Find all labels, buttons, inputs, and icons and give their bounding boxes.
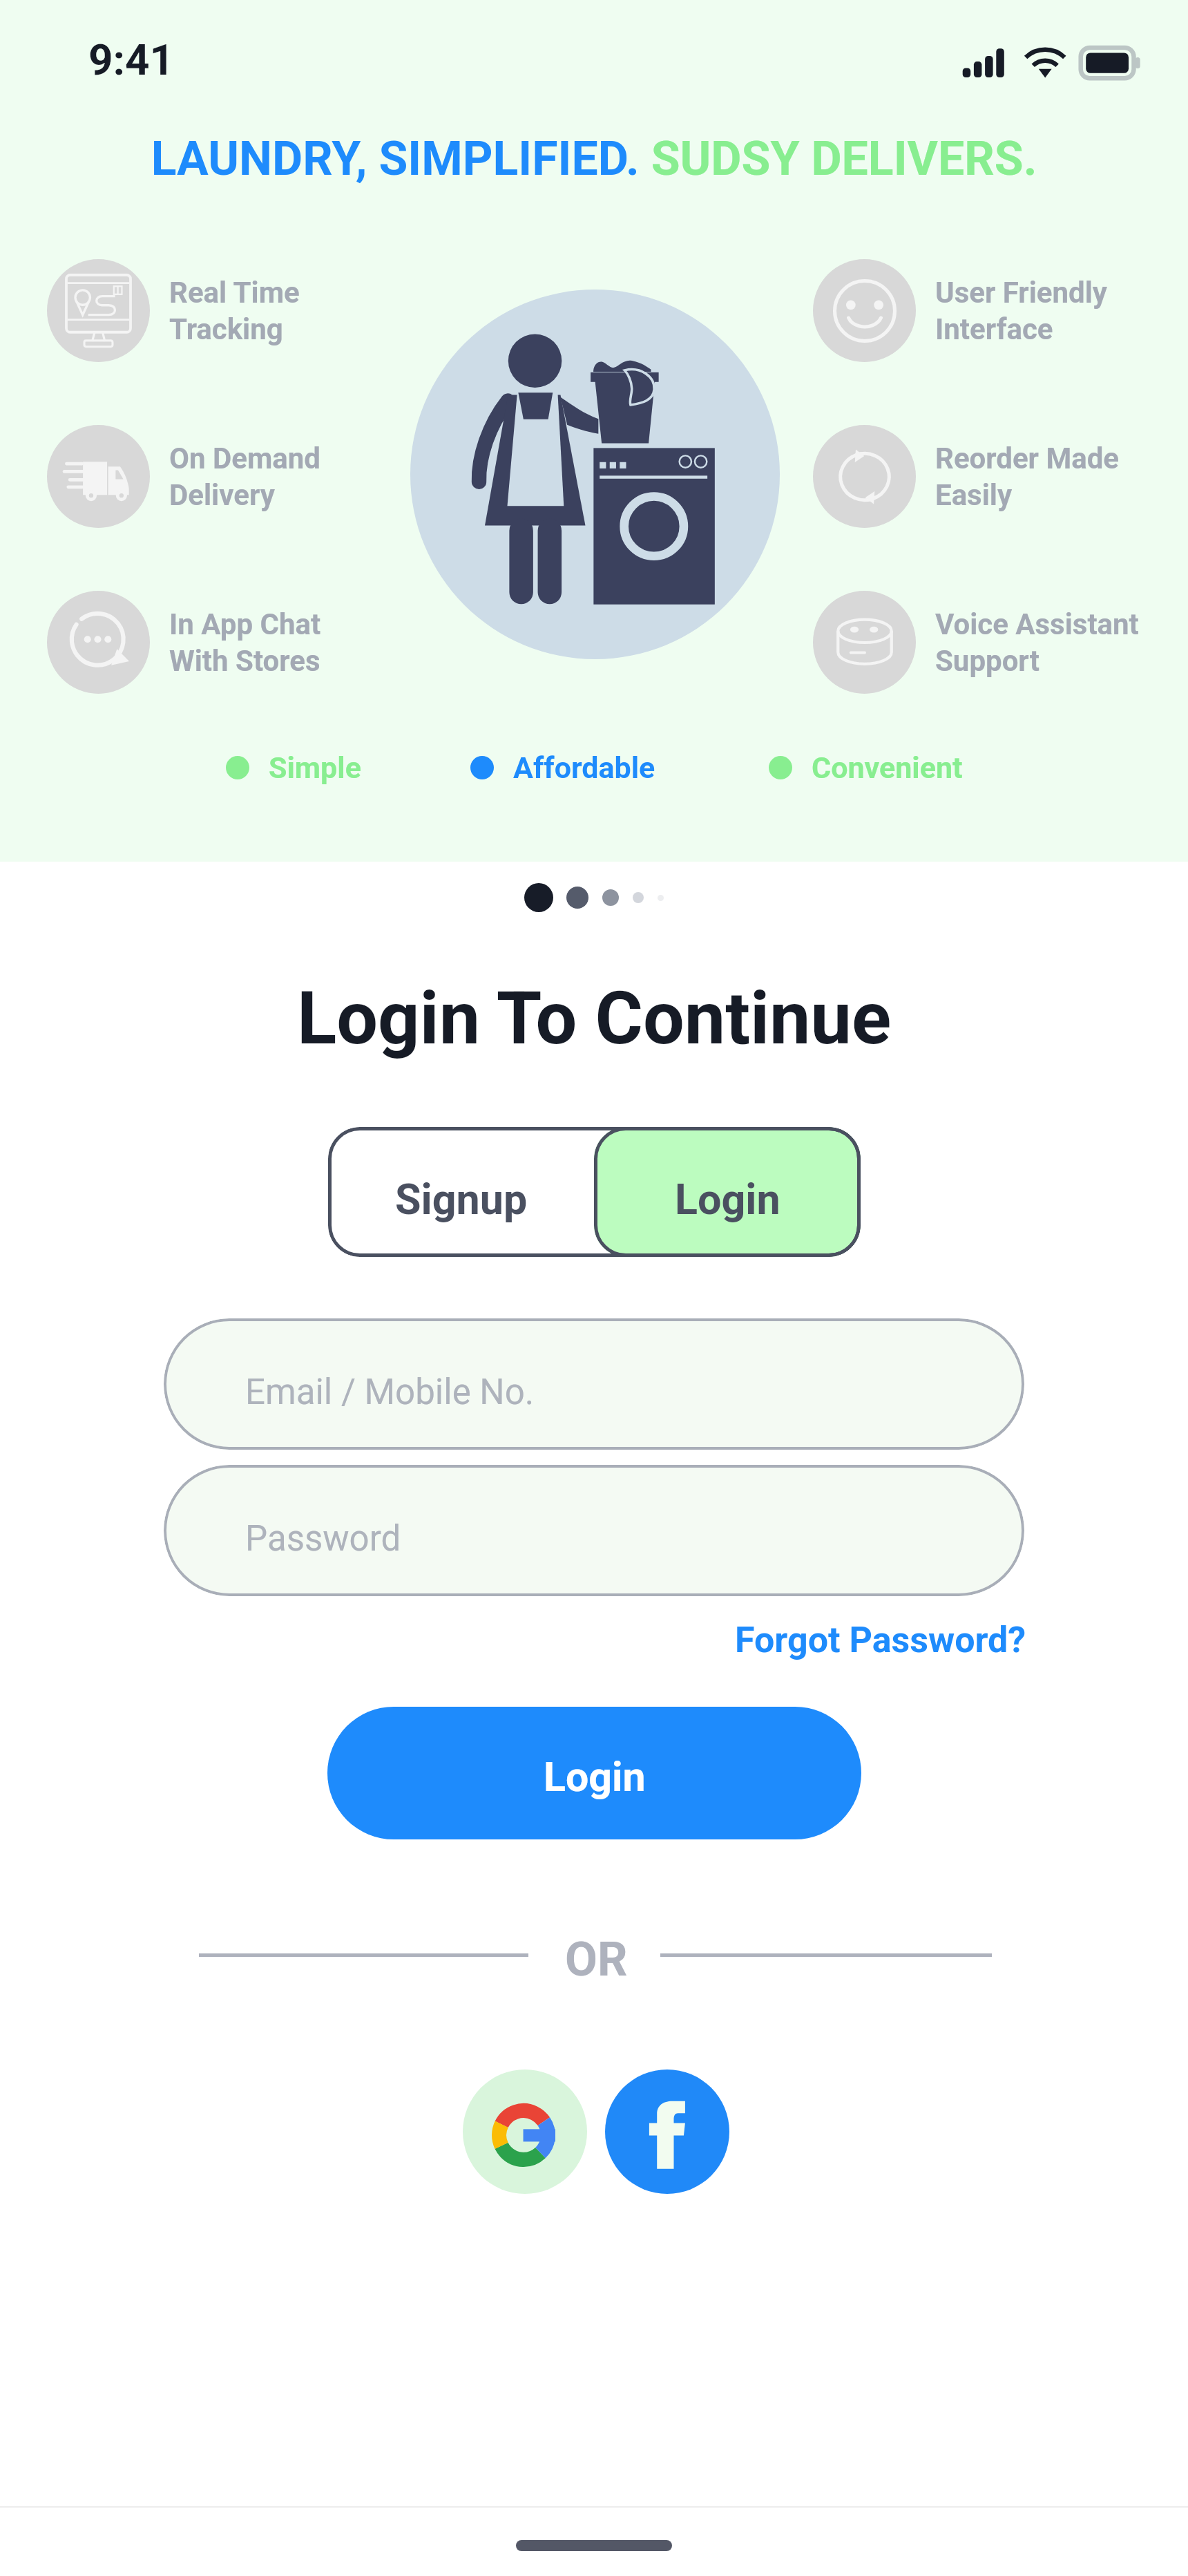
button[interactable]: Simple xyxy=(226,750,361,785)
button[interactable]: Login xyxy=(594,1127,861,1257)
staticText: On Demand Delivery xyxy=(169,442,320,512)
button[interactable]: Forgot Password? xyxy=(735,1619,1026,1661)
staticText: Real Time Tracking xyxy=(169,276,300,346)
staticText: In App Chat With Stores xyxy=(169,607,321,678)
button[interactable]: Page 2 xyxy=(566,887,588,909)
staticText: Password xyxy=(245,1518,401,1560)
button[interactable]: Convenient xyxy=(769,750,963,785)
staticText: Simple xyxy=(269,750,361,785)
button[interactable]: Password xyxy=(164,1465,1024,1596)
button[interactable]: Sign in with Facebook xyxy=(605,2070,729,2194)
button[interactable]: Page 5 xyxy=(658,895,664,901)
staticText: OR xyxy=(565,1932,628,1987)
staticText: User Friendly Interface xyxy=(935,276,1107,346)
staticText: Email / Mobile No. xyxy=(245,1372,535,1413)
staticText: Reorder Made Easily xyxy=(935,442,1120,512)
button[interactable]: Real Time Tracking xyxy=(47,259,300,362)
button[interactable]: Login xyxy=(327,1707,861,1839)
staticText: Affordable xyxy=(513,750,655,785)
button[interactable]: Page 1 xyxy=(524,883,553,912)
button[interactable]: Page 3 xyxy=(602,889,619,906)
staticText: LAUNDRY, SIMPLIFIED. SUDSY DELIVERS. xyxy=(0,131,1188,187)
button[interactable]: Email / Mobile No. xyxy=(164,1318,1024,1450)
staticText: 9:41 xyxy=(88,35,175,85)
button[interactable]: On Demand Delivery xyxy=(47,425,320,528)
staticText: Login xyxy=(675,1175,780,1224)
staticText: Convenient xyxy=(812,750,963,785)
staticText: Login To Continue xyxy=(0,976,1188,1061)
button[interactable]: Page 4 xyxy=(633,892,644,903)
staticText: Login xyxy=(544,1753,646,1801)
button[interactable]: In App Chat With Stores xyxy=(47,591,321,694)
button[interactable]: Voice Assistant Support xyxy=(813,591,1139,694)
button[interactable]: Signup xyxy=(328,1127,594,1257)
staticText: Signup xyxy=(395,1175,528,1224)
button[interactable]: User Friendly Interface xyxy=(813,259,1107,362)
button[interactable]: Affordable xyxy=(470,750,655,785)
button[interactable]: Reorder Made Easily xyxy=(813,425,1120,528)
staticText: Voice Assistant Support xyxy=(935,607,1139,678)
button[interactable]: Sign in with Google xyxy=(463,2070,587,2194)
